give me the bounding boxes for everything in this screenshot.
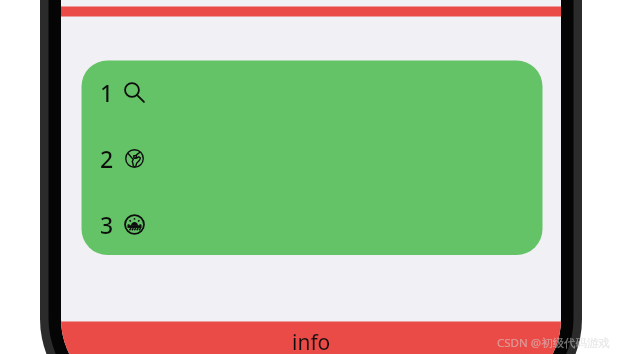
other: Search [124,82,145,103]
button[interactable]: 3 [82,192,543,257]
staticText: info [292,328,331,354]
button[interactable]: info [61,322,561,354]
staticText: CSDN @初级代码游戏 [497,335,611,351]
button[interactable]: App bar [61,0,561,16]
other: Weather [124,214,145,235]
staticText: 1 [100,77,114,108]
staticText: 3 [100,209,114,240]
other: Public [124,148,145,169]
button[interactable]: 1 [82,60,543,125]
button[interactable]: 2 [82,126,543,191]
staticText: 2 [100,143,114,174]
